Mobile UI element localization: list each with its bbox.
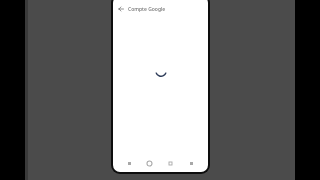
button[interactable]: Retour — [119, 157, 139, 170]
button[interactable]: Retour — [116, 4, 126, 14]
staticText: Compte Google — [128, 6, 166, 13]
button[interactable]: Accueil — [139, 157, 160, 170]
button[interactable]: Aperçu — [160, 157, 181, 170]
button[interactable]: Clavier — [181, 157, 202, 170]
